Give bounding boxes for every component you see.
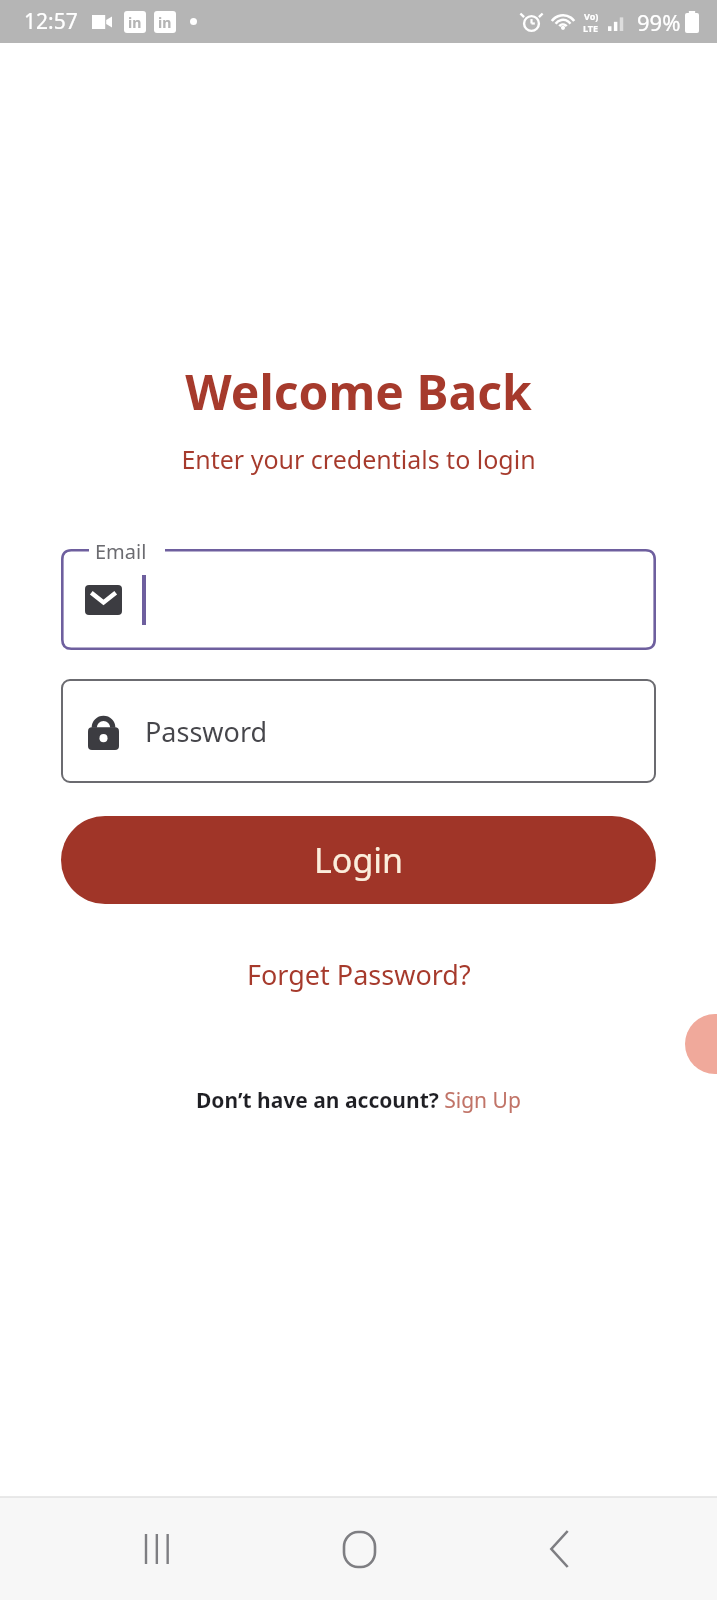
- button[interactable]: Email: [61, 549, 656, 650]
- button[interactable]: Recents: [112, 1504, 202, 1594]
- button[interactable]: Don’t have an account? Sign Up: [190, 1082, 527, 1119]
- staticText: Don’t have an account? Sign Up: [196, 1086, 521, 1115]
- staticText: 12:57: [24, 7, 78, 36]
- staticText: Forget Password?: [247, 956, 471, 993]
- button[interactable]: Login: [61, 816, 656, 904]
- staticText: in: [158, 13, 172, 32]
- button[interactable]: Password: [61, 679, 656, 783]
- button[interactable]: Forget Password?: [239, 952, 479, 997]
- staticText: in: [128, 13, 142, 32]
- staticText: LTE: [583, 22, 599, 34]
- staticText: Email: [95, 538, 147, 565]
- staticText: Password: [145, 713, 268, 750]
- staticText: 99%: [637, 7, 681, 37]
- staticText: Welcome Back: [185, 359, 532, 424]
- button[interactable]: Home: [314, 1504, 404, 1594]
- staticText: Enter your credentials to login: [181, 442, 536, 476]
- staticText: Login: [314, 837, 404, 883]
- button[interactable]: Back: [515, 1504, 605, 1594]
- staticText: Vo): [584, 10, 599, 22]
